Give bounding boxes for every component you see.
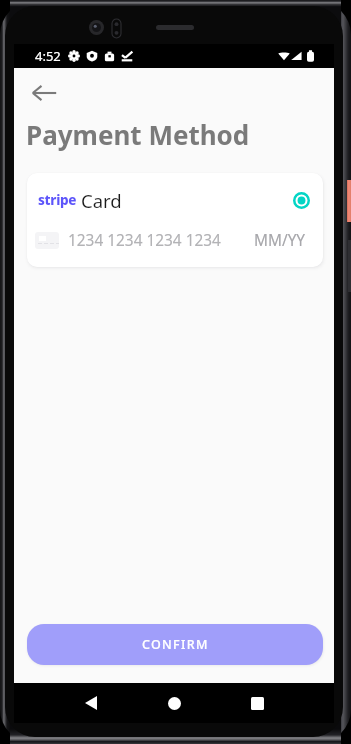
button[interactable]: Recent apps [237,686,278,720]
staticText: Card [81,188,122,213]
staticText: CONFIRM [142,636,209,653]
button[interactable]: CONFIRM [27,624,323,665]
button[interactable]: Home [154,686,195,720]
staticText: stripe [38,191,77,209]
staticText: 1234 1234 1234 1234 [68,230,221,251]
button[interactable]: Back [71,686,111,720]
button[interactable]: Back [24,73,64,113]
staticText: Payment Method [26,117,250,152]
staticText: 4:52 [35,47,61,65]
button[interactable]: stripe [27,173,323,267]
staticText: MM/YY [254,230,306,251]
